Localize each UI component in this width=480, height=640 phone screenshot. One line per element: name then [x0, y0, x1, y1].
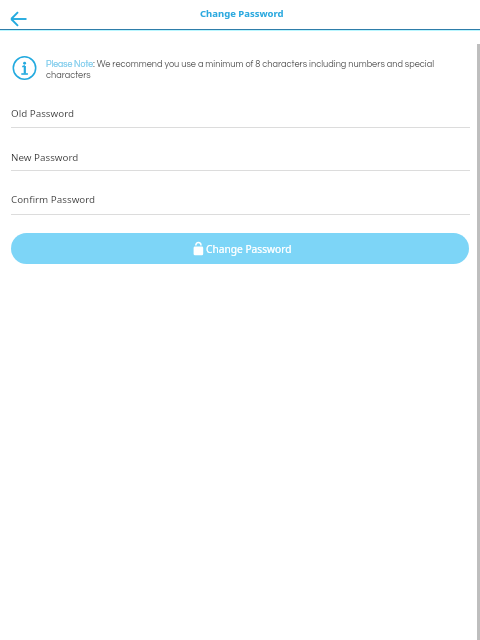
- button[interactable]: Old Password: [0, 99, 480, 128]
- button[interactable]: Confirm Password: [0, 185, 480, 215]
- staticText: New Password: [11, 151, 79, 164]
- button[interactable]: Change Password: [11, 233, 469, 264]
- staticText: Please Note: We recommend you use a mini…: [46, 59, 444, 80]
- staticText: Confirm Password: [11, 193, 96, 206]
- button[interactable]: Back: [4, 4, 34, 34]
- staticText: Change Password: [206, 242, 292, 256]
- staticText: Change Password: [200, 7, 284, 20]
- staticText: Old Password: [11, 107, 75, 120]
- button[interactable]: New Password: [0, 143, 480, 171]
